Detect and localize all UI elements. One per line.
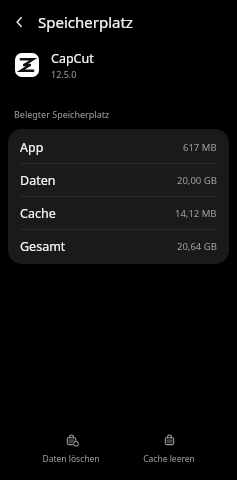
- staticText: Cache leeren: [143, 453, 195, 465]
- staticText: CapCut: [51, 50, 94, 67]
- staticText: 617 MB: [183, 141, 217, 154]
- button[interactable]: Gesamt: [8, 230, 229, 262]
- staticText: 20,64 GB: [177, 240, 217, 253]
- staticText: App: [20, 139, 44, 156]
- staticText: Speicherplatz: [38, 12, 133, 32]
- staticText: 20,00 GB: [177, 174, 217, 187]
- staticText: Daten löschen: [42, 453, 100, 465]
- button[interactable]: Cache: [8, 197, 229, 229]
- button[interactable]: Cache leeren: [143, 428, 195, 469]
- staticText: 14,12 MB: [175, 207, 217, 220]
- staticText: Belegter Speicherplatz: [14, 108, 110, 120]
- staticText: Daten: [20, 172, 56, 189]
- button[interactable]: App: [8, 131, 229, 163]
- button[interactable]: Daten: [8, 164, 229, 196]
- button[interactable]: Daten löschen: [42, 428, 100, 469]
- button[interactable]: Back: [4, 6, 36, 38]
- staticText: Gesamt: [20, 238, 66, 255]
- staticText: 12.5.0: [51, 68, 77, 80]
- staticText: Cache: [20, 205, 56, 222]
